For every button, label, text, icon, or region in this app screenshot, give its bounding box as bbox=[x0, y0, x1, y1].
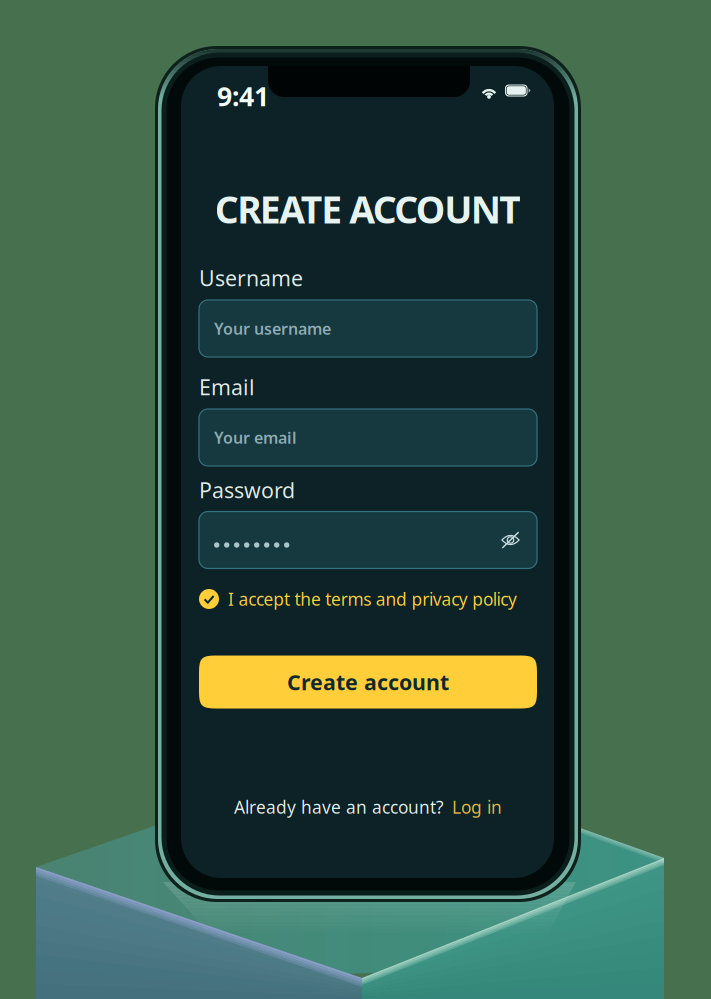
staticText: Username bbox=[199, 264, 303, 292]
button[interactable]: Log in bbox=[452, 795, 502, 818]
staticText: 9:41 bbox=[217, 78, 269, 114]
button[interactable]: I accept the terms and privacy policy bbox=[0, 587, 499, 610]
staticText: Your email bbox=[214, 427, 297, 448]
staticText: CREATE ACCOUNT bbox=[215, 184, 521, 234]
staticText: Log in bbox=[452, 795, 502, 818]
staticText: Password bbox=[199, 476, 295, 504]
staticText: Already have an account? bbox=[234, 795, 444, 818]
button[interactable]: Your email bbox=[199, 409, 537, 466]
button[interactable]: Your username bbox=[199, 300, 537, 357]
button[interactable]: Create account bbox=[199, 655, 537, 708]
button[interactable] bbox=[199, 511, 537, 568]
staticText: I accept the terms and privacy policy bbox=[228, 587, 517, 610]
staticText: Your username bbox=[214, 318, 331, 339]
staticText: Create account bbox=[287, 668, 449, 696]
staticText: Email bbox=[199, 373, 255, 401]
